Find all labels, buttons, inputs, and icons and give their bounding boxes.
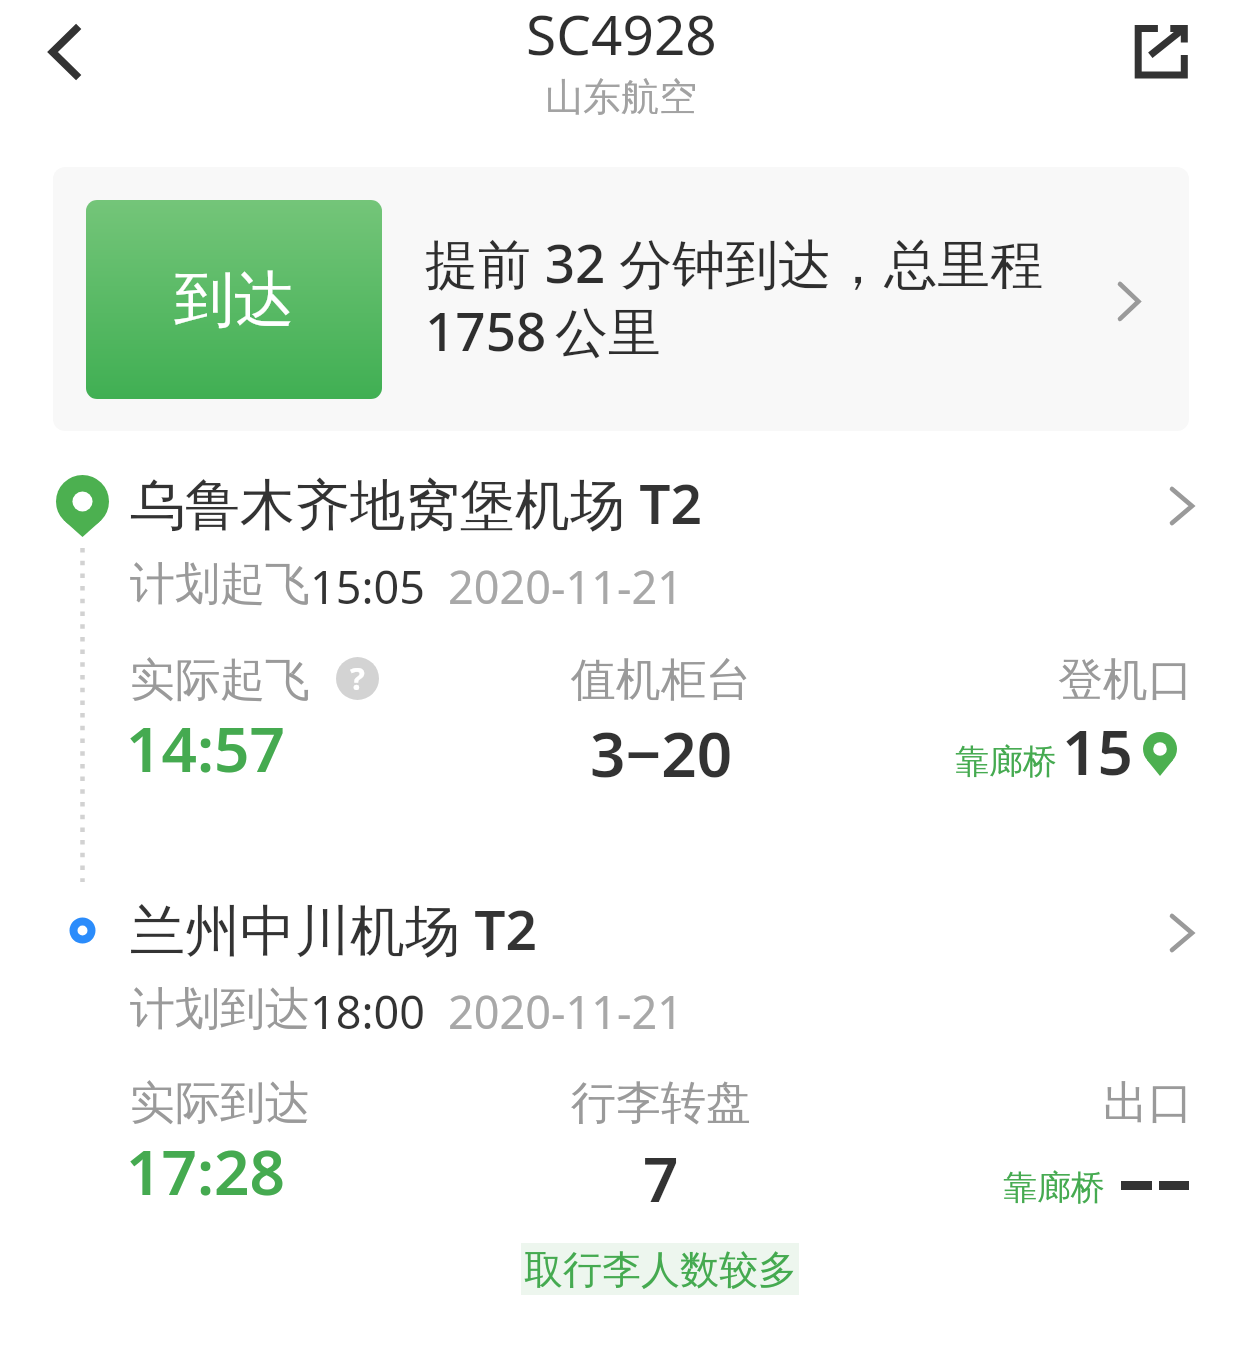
staticText: 到达 bbox=[174, 262, 294, 338]
staticText: 3−20 bbox=[590, 711, 733, 795]
button[interactable]: Back bbox=[14, 6, 114, 106]
staticText: 行李转盘 bbox=[571, 1075, 751, 1132]
staticText: 计划起飞 bbox=[130, 556, 310, 613]
button[interactable]: 到达 bbox=[53, 167, 1189, 431]
staticText: 14:57 bbox=[126, 706, 285, 790]
staticText: 出口 bbox=[1103, 1075, 1193, 1132]
staticText: 实际到达 bbox=[130, 1075, 310, 1132]
staticText: 靠廊桥 bbox=[955, 740, 1057, 783]
staticText: 7 bbox=[643, 1136, 679, 1220]
staticText: 取行李人数较多 bbox=[524, 1245, 797, 1294]
staticText: 18:00 bbox=[310, 981, 426, 1042]
staticText: 登机口 bbox=[1058, 652, 1193, 709]
button[interactable]: Share bbox=[1120, 11, 1202, 93]
staticText: 山东航空 bbox=[545, 73, 697, 121]
staticText: 值机柜台 bbox=[571, 652, 751, 709]
staticText: 计划到达 bbox=[130, 981, 310, 1038]
staticText: 乌鲁木齐地窝堡机场 T2 bbox=[130, 465, 703, 540]
staticText: 17:28 bbox=[126, 1129, 285, 1213]
staticText: 兰州中川机场 T2 bbox=[130, 891, 538, 966]
button[interactable]: 兰州中川机场 T2 bbox=[0, 881, 1242, 1311]
staticText: ? bbox=[350, 657, 365, 699]
button[interactable]: 乌鲁木齐地窝堡机场 T2 bbox=[0, 455, 1242, 795]
staticText: 2020-11-21 bbox=[448, 981, 683, 1042]
staticText: 提前 32 分钟到达，总里程 1758 公里 bbox=[425, 226, 1125, 367]
staticText: 实际起飞 bbox=[130, 652, 310, 709]
staticText: SC4928 bbox=[526, 0, 717, 71]
staticText: 15:05 bbox=[310, 556, 426, 617]
staticText: 靠廊桥 bbox=[1003, 1166, 1105, 1209]
staticText: 15 bbox=[1062, 709, 1133, 793]
staticText: 2020-11-21 bbox=[448, 556, 683, 617]
